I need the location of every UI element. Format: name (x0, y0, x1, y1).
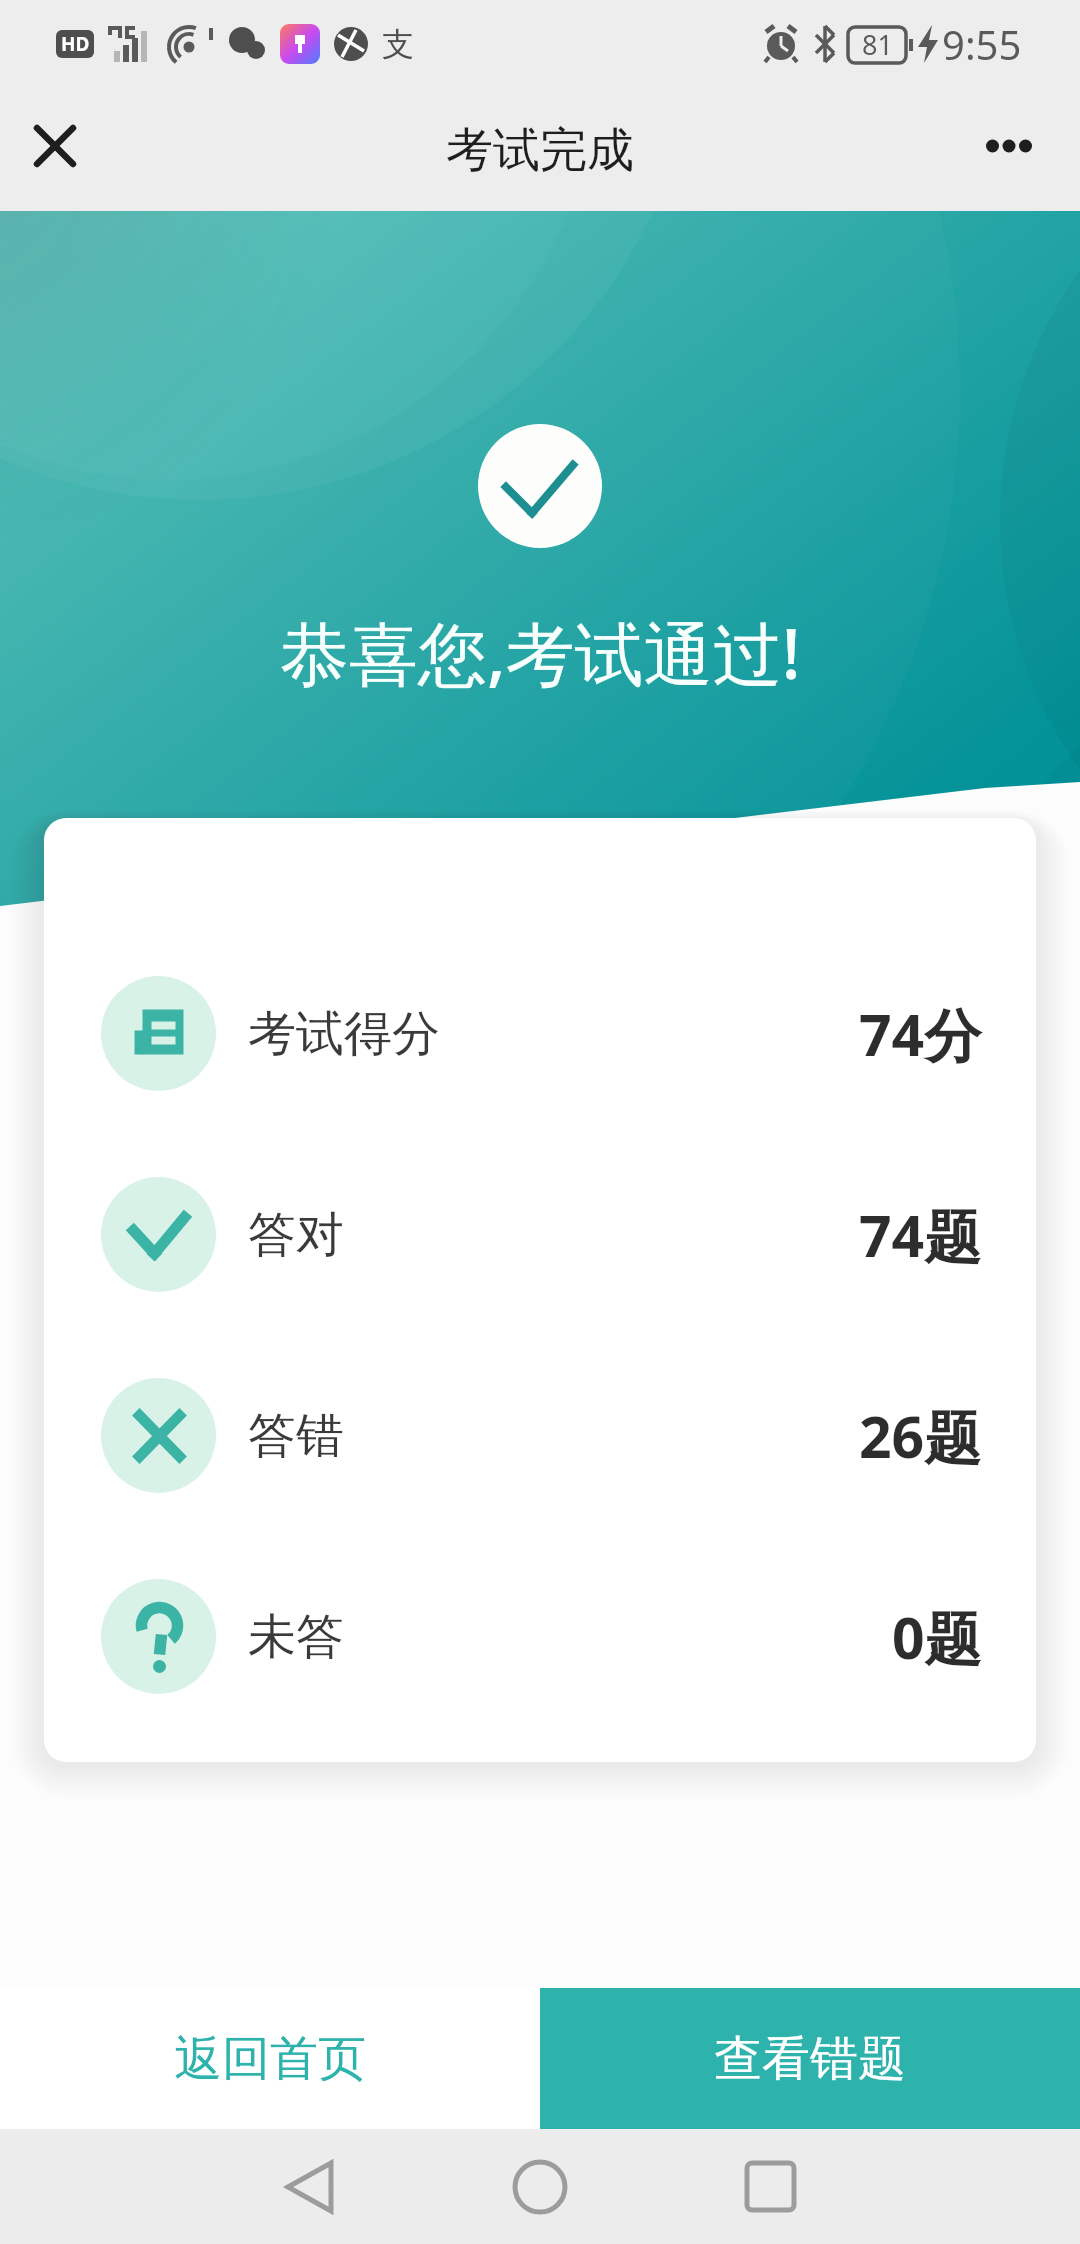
staticText: 9:55 (942, 17, 1022, 71)
staticText: 未答 (248, 1607, 344, 1667)
staticText: 考试完成 (446, 121, 634, 180)
staticText: 74分 (859, 995, 982, 1073)
button[interactable]: Back (249, 2129, 369, 2244)
staticText: 返回首页 (174, 2029, 366, 2089)
staticText: 74题 (859, 1196, 982, 1274)
staticText: 26题 (859, 1397, 982, 1475)
button[interactable]: 考试得分 (44, 933, 1036, 1134)
button[interactable]: 答错 (44, 1335, 1036, 1536)
staticText: 恭喜您,考试通过! (280, 605, 801, 699)
staticText: 81 (862, 26, 893, 63)
button[interactable]: More options (953, 90, 1065, 202)
button[interactable]: 返回首页 (0, 1988, 540, 2129)
staticText: 答错 (248, 1406, 344, 1466)
staticText: 答对 (248, 1205, 344, 1265)
button[interactable]: Close (0, 90, 111, 202)
staticText: 考试得分 (248, 1004, 440, 1064)
button[interactable]: Recents (711, 2129, 831, 2244)
button[interactable]: 查看错题 (540, 1988, 1080, 2129)
staticText: HD (61, 31, 90, 57)
staticText: 0题 (892, 1598, 982, 1676)
staticText: 支 (382, 24, 414, 64)
button[interactable]: 答对 (44, 1134, 1036, 1335)
button[interactable]: Home (480, 2129, 600, 2244)
staticText: 查看错题 (714, 2029, 906, 2089)
button[interactable]: 未答 (44, 1536, 1036, 1737)
